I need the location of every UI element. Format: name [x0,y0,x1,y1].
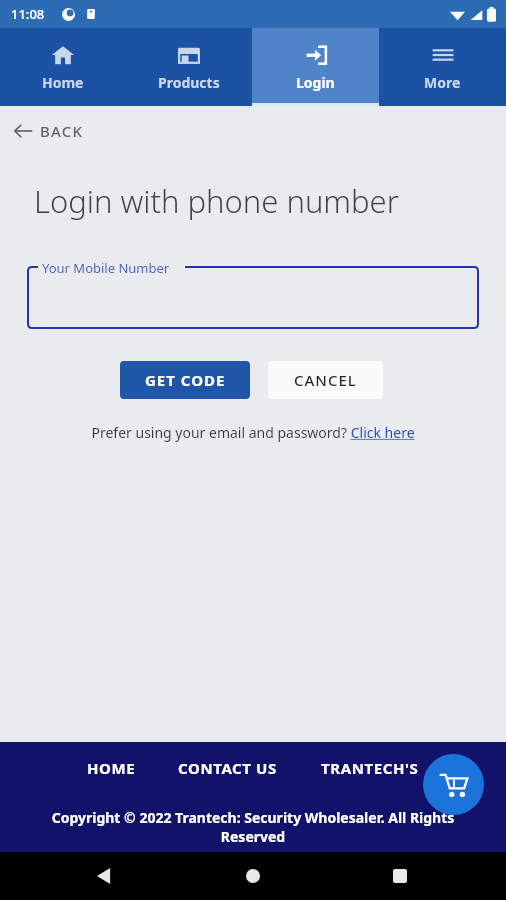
button[interactable]: CANCEL [268,361,383,399]
staticText: Products [158,73,220,92]
staticText: Login [296,73,335,92]
staticText: Home [42,73,84,92]
other: Back [97,868,113,884]
staticText: TRANTECH'S [321,758,419,778]
button[interactable]: Products [126,28,252,106]
staticText: More [424,73,461,92]
button[interactable]: TRANTECH'S [321,758,419,778]
staticText: Copyright © 2022 Trantech: Security Whol… [18,808,488,846]
staticText: BACK [40,121,84,141]
button[interactable]: Login [252,28,379,106]
button[interactable]: BACK [12,120,84,142]
staticText: HOME [87,758,136,778]
button[interactable]: More [379,28,506,106]
staticText: CONTACT US [178,758,277,778]
button[interactable]: Prefer using your email and password? Cl… [91,423,415,442]
button[interactable]: Cart [423,754,484,815]
button[interactable]: GET CODE [120,361,250,399]
staticText: 11:08 [11,5,45,23]
staticText: Login with phone number [34,180,399,222]
button[interactable]: Home [0,28,126,106]
button[interactable]: HOME [87,758,136,778]
staticText: CANCEL [294,370,357,390]
staticText: GET CODE [145,370,226,390]
other: Home [246,869,260,883]
staticText: Your Mobile Number [42,259,170,277]
other: Recents [393,869,407,883]
button[interactable]: CONTACT US [178,758,277,778]
